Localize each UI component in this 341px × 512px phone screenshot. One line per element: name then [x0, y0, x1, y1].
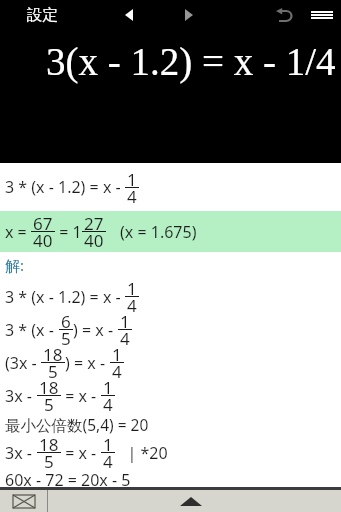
staticText: ) = x - — [73, 319, 118, 341]
staticText: 1 — [127, 277, 137, 300]
button[interactable] — [0, 490, 48, 512]
staticText: x = — [5, 221, 31, 243]
staticText: 5 — [44, 393, 54, 416]
staticText: 1 — [127, 168, 137, 191]
staticText: 1 — [120, 310, 130, 333]
button[interactable] — [308, 7, 336, 23]
staticText: 4 — [103, 450, 113, 473]
staticText: = x - — [61, 442, 101, 464]
button[interactable]: 設定 — [20, 1, 65, 29]
button[interactable] — [179, 3, 199, 27]
staticText: 4 — [127, 185, 137, 208]
staticText: 5 — [61, 327, 71, 350]
staticText: 1 — [112, 343, 122, 366]
staticText: 40 — [33, 229, 53, 252]
staticText: 4 — [112, 360, 122, 383]
staticText: 5 — [48, 360, 58, 383]
staticText: 4 — [127, 294, 137, 317]
staticText: = x - — [61, 385, 101, 407]
staticText: 3x - — [5, 385, 37, 407]
button[interactable] — [272, 4, 296, 26]
staticText: 3(x - 1.2) = x - 1/4 — [46, 40, 336, 83]
staticText: 60x - 72 = 20x - 5 — [5, 469, 131, 487]
staticText: 4 — [120, 327, 130, 350]
staticText: 3 * (x - — [5, 319, 59, 341]
staticText: (3x - — [5, 352, 41, 374]
staticText: 5 — [44, 450, 54, 473]
staticText: 1 — [103, 376, 113, 399]
button[interactable] — [162, 495, 220, 508]
staticText: 27 — [84, 212, 104, 235]
staticText: ) = x - — [65, 352, 110, 374]
staticText: 18 — [39, 433, 59, 456]
staticText: 18 — [43, 343, 63, 366]
staticText: 3 * (x - 1.2) = x - — [5, 176, 125, 198]
staticText: 6 — [61, 310, 71, 333]
staticText: = 1 — [55, 221, 82, 243]
staticText: 40 — [84, 229, 104, 252]
staticText: 設定 — [27, 5, 58, 25]
staticText: 最小公倍数(5,4) = 20 — [5, 414, 149, 435]
staticText: 解: — [5, 255, 25, 275]
button[interactable]: x = — [0, 211, 341, 252]
staticText: (x = 1.675) — [120, 221, 197, 243]
staticText: 3x - — [5, 442, 37, 464]
staticText: | *20 — [115, 442, 168, 464]
staticText: 67 — [33, 212, 53, 235]
button[interactable] — [119, 3, 139, 27]
staticText: 1 — [103, 433, 113, 456]
staticText: 18 — [39, 376, 59, 399]
staticText: 3 * (x - 1.2) = x - — [5, 286, 125, 308]
staticText: 4 — [103, 393, 113, 416]
